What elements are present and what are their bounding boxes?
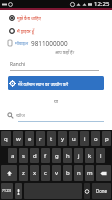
staticText: खोज xyxy=(16,112,25,119)
staticText: k xyxy=(88,152,92,160)
staticText: ?123 xyxy=(2,188,12,194)
staticText: o xyxy=(94,135,98,143)
button[interactable]: t xyxy=(47,131,56,146)
button[interactable]: c xyxy=(41,165,50,181)
button[interactable]: o xyxy=(91,131,100,146)
button[interactable]: Voice input xyxy=(15,183,22,199)
button[interactable]: k xyxy=(85,148,94,163)
button[interactable]: p xyxy=(102,131,111,146)
button[interactable]: w xyxy=(13,131,23,146)
staticText: u xyxy=(72,135,76,143)
staticText: m xyxy=(87,169,93,177)
staticText: y xyxy=(61,135,65,143)
staticText: Ranchi xyxy=(10,61,26,68)
staticText: x xyxy=(33,169,37,177)
button[interactable]: m xyxy=(85,165,94,181)
staticText: मेरे वर्तमान स्थान का उपयोग करें xyxy=(18,81,69,87)
button[interactable]: Done xyxy=(92,183,111,199)
button[interactable]: d xyxy=(30,148,39,163)
button[interactable]: Shift xyxy=(1,165,17,181)
staticText: r xyxy=(39,135,42,143)
staticText: s xyxy=(22,152,25,160)
staticText: 9811000000 xyxy=(31,39,68,47)
staticText: d xyxy=(33,152,37,160)
button[interactable]: v xyxy=(52,165,61,181)
button[interactable]: u xyxy=(69,131,78,146)
staticText: v xyxy=(55,169,59,177)
staticText: z xyxy=(22,169,25,177)
staticText: h xyxy=(66,152,70,160)
button[interactable]: मेरे वर्तमान स्थान का उपयोग करें xyxy=(8,76,104,90)
button[interactable]: q xyxy=(1,131,11,146)
staticText: j xyxy=(78,152,80,160)
staticText: Done xyxy=(96,188,108,194)
button[interactable]: b xyxy=(63,165,72,181)
button[interactable]: a xyxy=(8,148,17,163)
button[interactable]: s xyxy=(19,148,28,163)
staticText: w xyxy=(16,135,21,143)
button[interactable]: g xyxy=(52,148,61,163)
staticText: t xyxy=(50,135,53,143)
staticText: e xyxy=(28,135,32,143)
button[interactable]: मैं ड्राइवर हूँ xyxy=(9,27,35,35)
staticText: c xyxy=(44,169,47,177)
button[interactable]: x xyxy=(30,165,39,181)
button[interactable]: h xyxy=(63,148,72,163)
staticText: q xyxy=(4,135,8,143)
button[interactable]: j xyxy=(74,148,83,163)
button[interactable]: Emoji xyxy=(84,183,90,199)
button[interactable]: i xyxy=(80,131,89,146)
staticText: g xyxy=(55,152,59,160)
button[interactable]: n xyxy=(74,165,83,181)
button[interactable]: e xyxy=(25,131,34,146)
staticText: p xyxy=(105,135,109,143)
staticText: b xyxy=(66,169,70,177)
staticText: 12:25 xyxy=(94,0,110,8)
staticText: f xyxy=(44,152,47,160)
button[interactable]: r xyxy=(36,131,45,146)
button[interactable]: z xyxy=(19,165,28,181)
button[interactable]: l xyxy=(96,148,105,163)
button[interactable]: y xyxy=(58,131,67,146)
staticText: n xyxy=(77,169,81,177)
staticText: l xyxy=(100,152,102,160)
staticText: मुझे कैब चाहिए xyxy=(17,15,41,21)
other: Search xyxy=(7,112,14,119)
button[interactable]: f xyxy=(41,148,50,163)
button[interactable]: Backspace xyxy=(96,165,111,181)
button[interactable]: मुझे कैब चाहिए xyxy=(9,14,41,22)
staticText: आप कहाँ हैं? xyxy=(55,50,75,56)
staticText: मोबाइल xyxy=(15,40,29,46)
staticText: i xyxy=(84,135,86,143)
staticText: या xyxy=(54,98,59,105)
staticText: a xyxy=(11,152,15,160)
staticText: मैं ड्राइवर हूँ xyxy=(17,28,35,34)
button[interactable]: ?123 xyxy=(1,183,13,199)
